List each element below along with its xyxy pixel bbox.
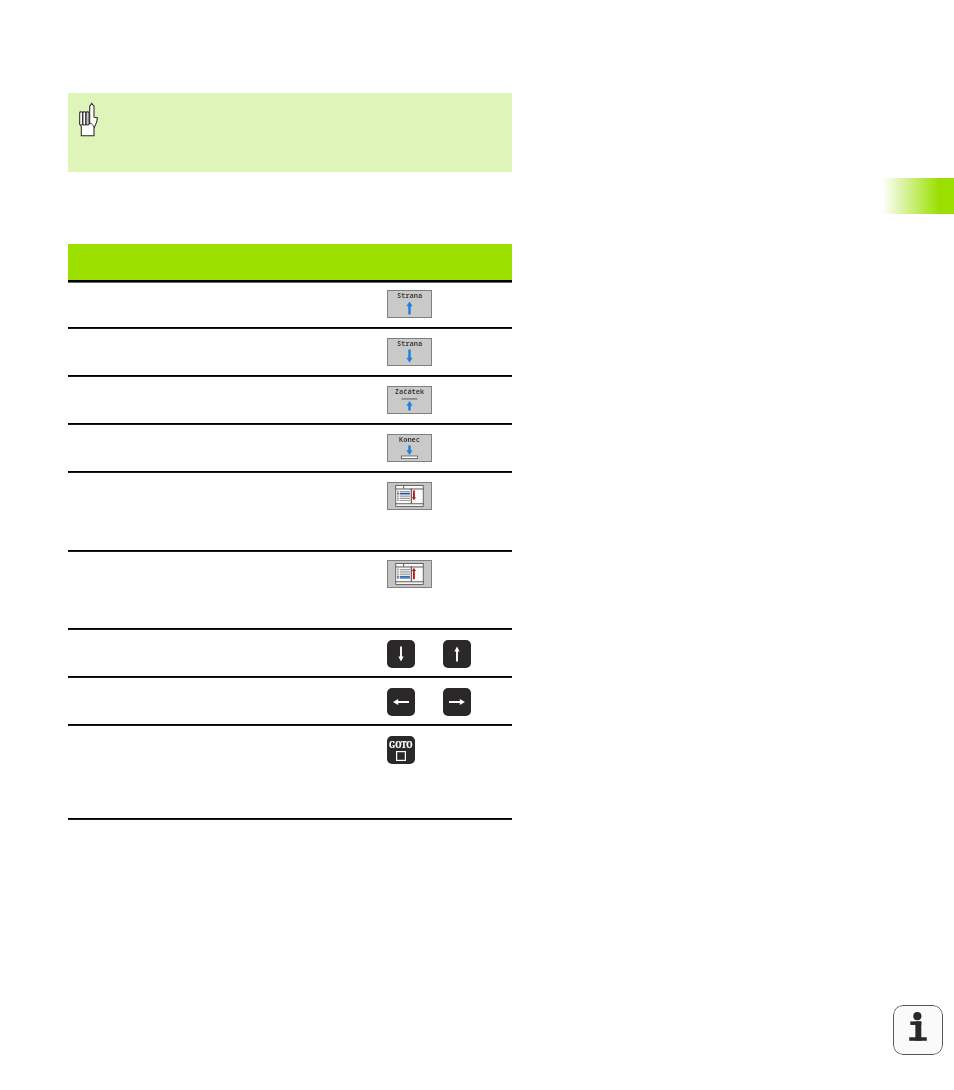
button[interactable]: Arrow down [387,640,415,668]
button[interactable]: Previous block [387,560,432,588]
button[interactable]: Information [893,1005,943,1055]
button[interactable]: Arrow right [443,688,471,716]
button[interactable]: GOTO [387,736,415,764]
button[interactable]: Začátek [387,386,432,414]
staticText: Strana [387,291,432,301]
staticText: Začátek [387,387,432,397]
button[interactable]: Arrow up [443,640,471,668]
staticText: Strana [387,339,432,349]
button[interactable]: Strana [387,290,432,318]
button[interactable]: Next block [387,482,432,510]
button[interactable]: Arrow left [387,688,415,716]
staticText: Konec [387,435,432,445]
staticText: GOTO [389,739,413,750]
button[interactable]: Konec [387,434,432,462]
button[interactable]: Strana [387,338,432,366]
